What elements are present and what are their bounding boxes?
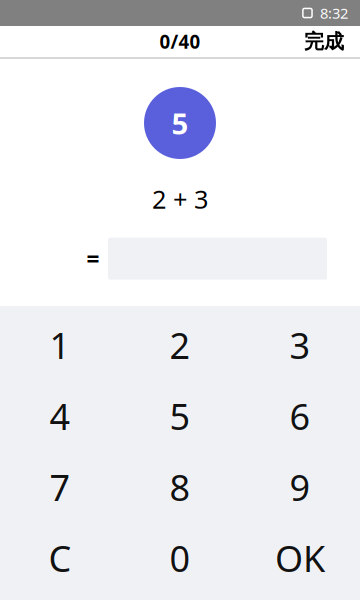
staticText: 6 <box>289 392 310 440</box>
staticText: 9 <box>289 463 310 511</box>
button[interactable]: 3 <box>240 309 360 380</box>
button[interactable]: 2 <box>120 309 240 380</box>
staticText: 3 <box>289 321 310 369</box>
button[interactable]: 5 <box>120 380 240 451</box>
button[interactable]: 7 <box>0 451 120 522</box>
staticText: 8:32 <box>320 3 348 23</box>
button[interactable]: 8 <box>120 451 240 522</box>
button[interactable]: 完成 <box>294 23 354 60</box>
staticText: 5 <box>169 392 190 440</box>
staticText: 0/40 <box>159 29 200 54</box>
staticText: 2 + 3 <box>152 182 208 216</box>
staticText: 0 <box>169 534 190 582</box>
button[interactable]: 0 <box>120 522 240 593</box>
staticText: 5 <box>171 103 188 142</box>
button[interactable]: 1 <box>0 309 120 380</box>
staticText: 7 <box>49 463 70 511</box>
staticText: 4 <box>49 392 70 440</box>
button[interactable]: 4 <box>0 380 120 451</box>
staticText: 完成 <box>304 29 344 54</box>
button[interactable]: OK <box>240 522 360 593</box>
staticText: C <box>48 534 71 582</box>
button[interactable]: 9 <box>240 451 360 522</box>
staticText: 8 <box>169 463 190 511</box>
staticText: = <box>86 244 99 274</box>
button[interactable]: 6 <box>240 380 360 451</box>
staticText: 2 <box>169 321 190 369</box>
staticText: 1 <box>49 321 70 369</box>
staticText: OK <box>275 534 325 582</box>
button[interactable]: C <box>0 522 120 593</box>
